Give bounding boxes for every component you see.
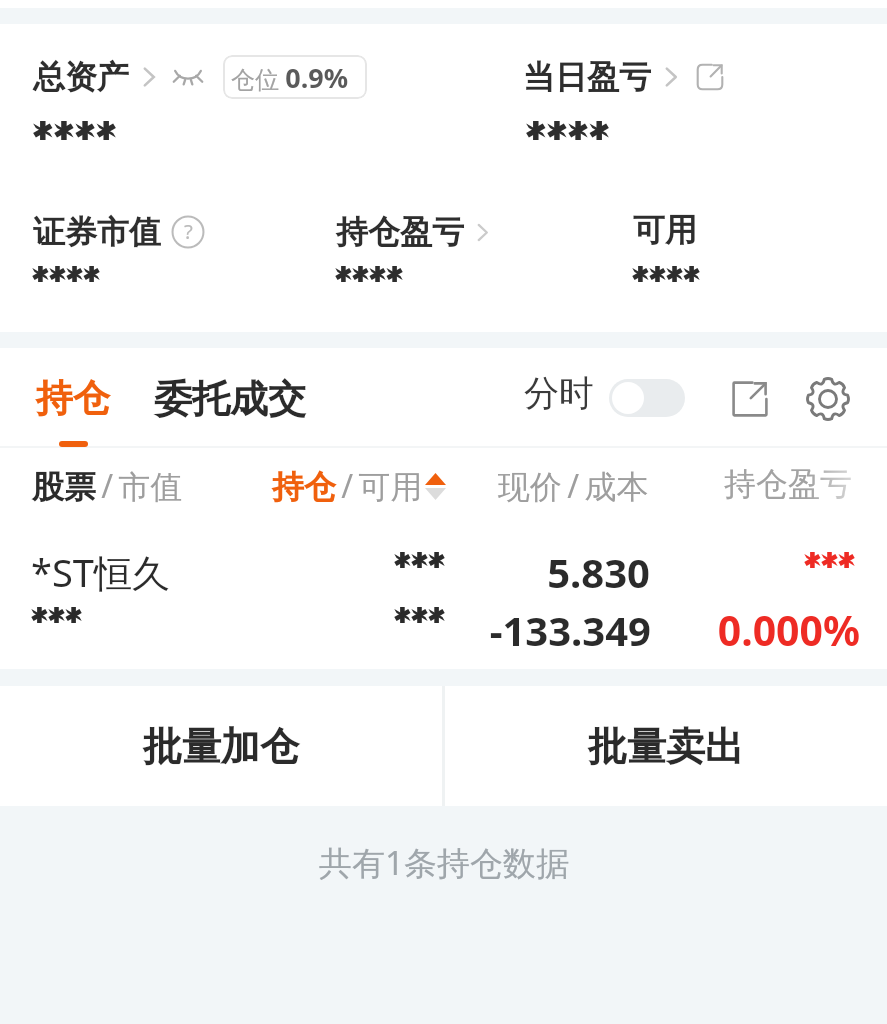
staticText: ? bbox=[184, 217, 193, 245]
button[interactable]: 隐藏金额 bbox=[170, 58, 222, 97]
button[interactable]: 分时开关 bbox=[609, 379, 685, 417]
staticText: -133.349 bbox=[451, 603, 651, 657]
button[interactable]: 批量加仓 bbox=[0, 686, 442, 806]
button[interactable]: 批量卖出 bbox=[445, 686, 887, 806]
staticText: 分时 bbox=[524, 371, 594, 415]
button[interactable]: 委托成交 bbox=[144, 375, 316, 423]
button[interactable]: 全屏显示 bbox=[722, 371, 778, 427]
staticText: 当日盈亏 bbox=[523, 57, 651, 97]
staticText: 仓位 0.9% bbox=[231, 59, 349, 96]
staticText: 持仓 / 可用 bbox=[272, 464, 423, 508]
button[interactable]: 持仓 bbox=[26, 375, 120, 447]
staticText: 证券市值 bbox=[33, 212, 161, 252]
staticText: *ST恒久 bbox=[31, 546, 170, 598]
staticText: 持仓盈亏 bbox=[724, 464, 852, 504]
button[interactable]: 展开当日盈亏 bbox=[692, 59, 728, 95]
staticText: 总资产 bbox=[33, 57, 129, 97]
staticText: 批量加仓 bbox=[143, 722, 299, 771]
button[interactable]: 设置 bbox=[797, 368, 859, 430]
staticText: 委托成交 bbox=[154, 375, 306, 423]
staticText: 5.830 bbox=[450, 545, 650, 599]
button[interactable]: *ST恒久 bbox=[0, 538, 887, 648]
staticText: 共有1条持仓数据 bbox=[319, 840, 569, 885]
button[interactable]: 仓位 0.9% bbox=[223, 55, 367, 99]
staticText: 批量卖出 bbox=[588, 722, 744, 771]
staticText: 股票 / 市值 bbox=[32, 464, 183, 508]
staticText: 持仓 bbox=[36, 375, 110, 422]
staticText: 持仓盈亏 bbox=[336, 212, 464, 252]
staticText: 0.000% bbox=[660, 602, 860, 658]
staticText: 现价 / 成本 bbox=[498, 464, 649, 508]
staticText: 可用 bbox=[633, 210, 697, 250]
